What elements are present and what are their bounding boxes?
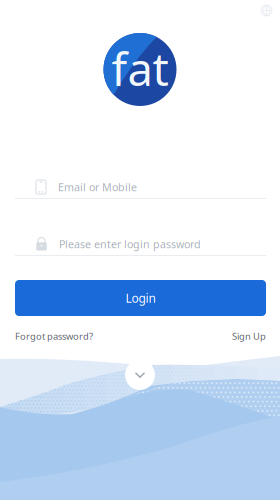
staticText: Please enter login password	[59, 237, 201, 251]
button[interactable]: Forgot password?	[15, 330, 93, 342]
staticText: Email or Mobile	[58, 180, 137, 194]
button[interactable]: Show more	[125, 360, 155, 390]
button[interactable]: Sign Up	[232, 330, 266, 342]
staticText: Login	[125, 290, 155, 306]
staticText: Forgot password?	[15, 330, 93, 342]
button[interactable]: Language	[253, 0, 280, 24]
staticText: Sign Up	[232, 330, 266, 342]
staticText: fat	[111, 38, 168, 99]
button[interactable]: Login	[15, 280, 266, 316]
